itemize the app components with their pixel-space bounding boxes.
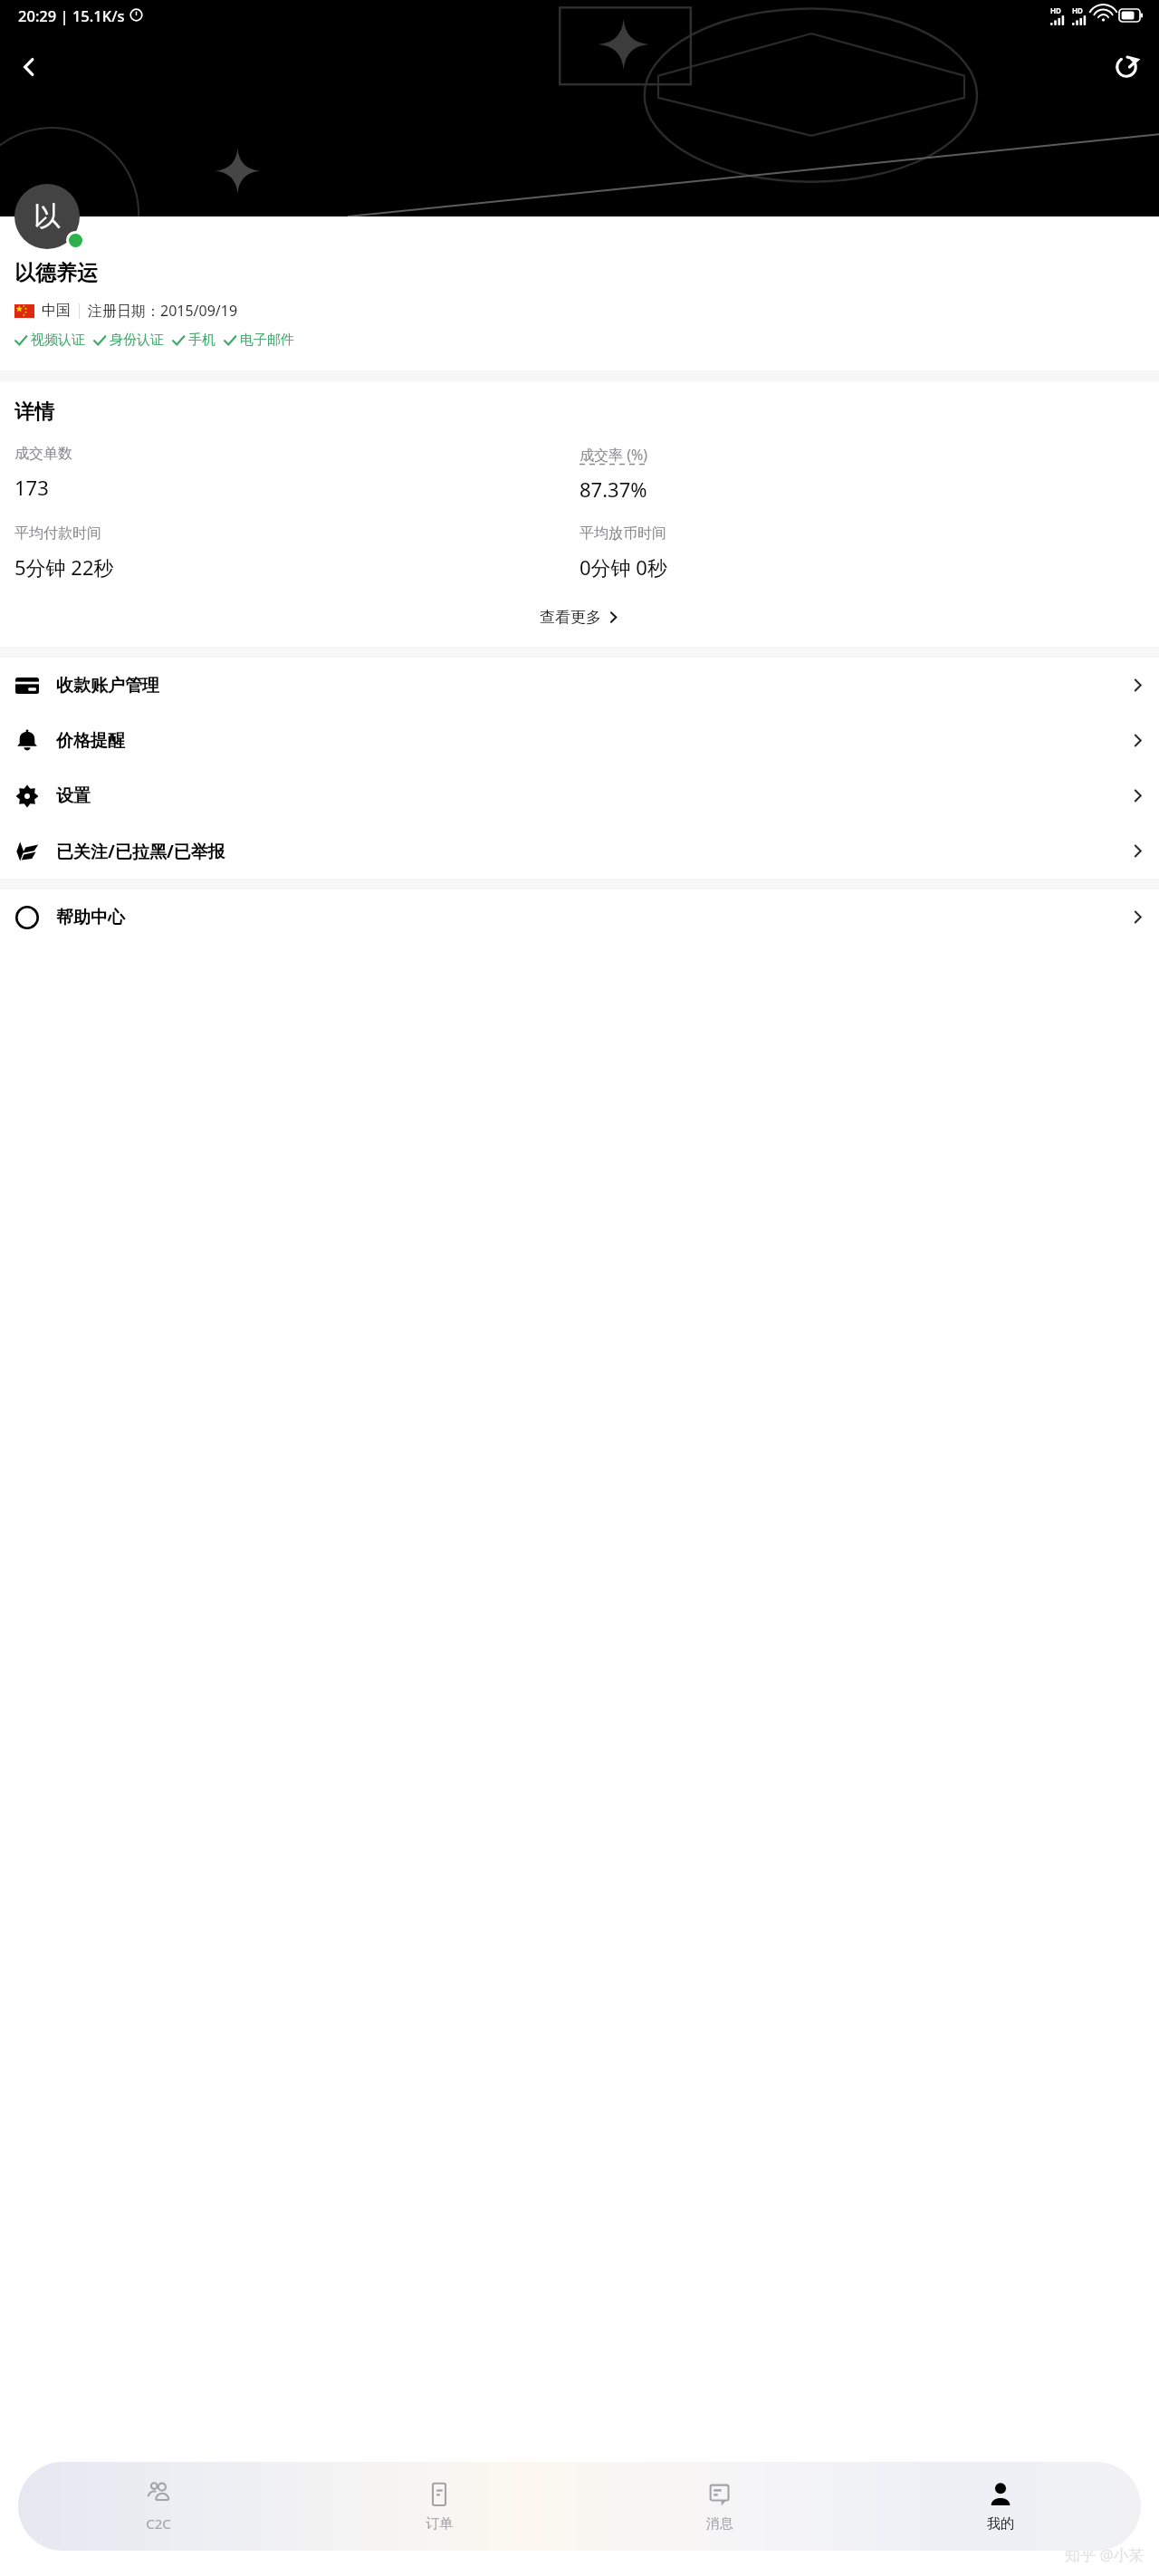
button[interactable]: 订单: [299, 2462, 579, 2551]
staticText: 设置: [56, 785, 91, 807]
button[interactable]: 以: [14, 184, 80, 249]
staticText: 收款账户管理: [56, 675, 159, 697]
staticText: 平均放币时间: [579, 524, 666, 543]
staticText: 以德养运: [14, 260, 98, 286]
staticText: HD: [1050, 5, 1061, 15]
button[interactable]: 设置: [0, 768, 1159, 823]
button[interactable]: 已关注/已拉黑/已举报: [0, 823, 1159, 879]
staticText: 手机: [188, 332, 216, 349]
button[interactable]: 消息: [579, 2462, 860, 2551]
staticText: HD: [1072, 5, 1083, 15]
staticText: 订单: [426, 2515, 453, 2533]
staticText: 已关注/已拉黑/已举报: [56, 840, 225, 863]
button[interactable]: C2C: [18, 2462, 299, 2551]
staticText: 查看更多: [540, 608, 601, 627]
button[interactable]: Refresh: [1105, 45, 1148, 89]
staticText: 5分钟 22秒: [14, 553, 114, 581]
staticText: 我的: [987, 2515, 1014, 2533]
staticText: 帮助中心: [56, 907, 125, 928]
button[interactable]: 帮助中心: [0, 889, 1159, 945]
button[interactable]: 收款账户管理: [0, 658, 1159, 713]
staticText: 视频认证: [31, 332, 85, 349]
staticText: 中国: [42, 302, 71, 320]
button[interactable]: 查看更多: [14, 601, 1145, 634]
button[interactable]: 价格提醒: [0, 713, 1159, 768]
staticText: 注册日期：2015/09/19: [88, 301, 238, 321]
button[interactable]: Back: [7, 45, 51, 89]
staticText: 身份认证: [110, 332, 164, 349]
staticText: 0分钟 0秒: [579, 553, 667, 581]
staticText: 20:29 | 15.1K/s: [18, 5, 125, 25]
staticText: 87.37%: [579, 476, 647, 503]
staticText: 电子邮件: [240, 332, 294, 349]
staticText: 平均付款时间: [14, 524, 101, 543]
staticText: 消息: [706, 2515, 733, 2533]
button[interactable]: 我的: [860, 2462, 1141, 2551]
staticText: C2C: [146, 2514, 171, 2533]
staticText: 成交率 (%): [579, 445, 648, 465]
staticText: 知乎 @小䒩: [1065, 2544, 1145, 2565]
staticText: 价格提醒: [56, 730, 125, 752]
staticText: 173: [14, 474, 49, 501]
staticText: 成交单数: [14, 445, 72, 463]
staticText: 详情: [14, 399, 54, 425]
staticText: 以: [34, 199, 61, 234]
